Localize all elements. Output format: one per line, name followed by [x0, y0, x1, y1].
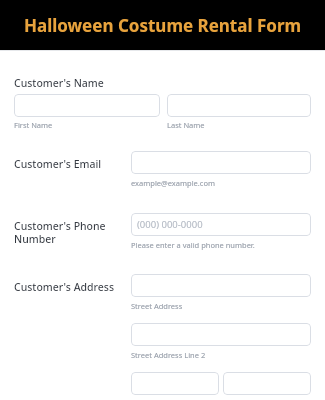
staticText: Customer's Email	[14, 157, 117, 171]
button[interactable]: Last Name	[167, 94, 311, 117]
button[interactable]: Customer's Phone Number	[131, 213, 311, 236]
button[interactable]: Street Address	[131, 274, 311, 297]
staticText: Customer's Address	[14, 280, 117, 294]
button[interactable]: State / Province	[223, 372, 311, 395]
button[interactable]: City	[131, 372, 219, 395]
staticText: Customer's Phone Number	[14, 219, 117, 246]
staticText: Please enter a valid phone number.	[131, 240, 255, 250]
button[interactable]: First Name	[14, 94, 160, 117]
staticText: Street Address	[131, 301, 183, 311]
staticText: (000) 000-0000	[137, 218, 203, 231]
staticText: Street Address Line 2	[131, 350, 206, 360]
button[interactable]: Customer's Email	[131, 151, 311, 174]
staticText: example@example.com	[131, 178, 215, 188]
staticText: Last Name	[167, 120, 205, 130]
button[interactable]: Street Address Line 2	[131, 323, 311, 346]
staticText: Customer's Name	[14, 76, 104, 90]
staticText: First Name	[14, 120, 53, 130]
staticText: Halloween Costume Rental Form	[0, 14, 325, 37]
